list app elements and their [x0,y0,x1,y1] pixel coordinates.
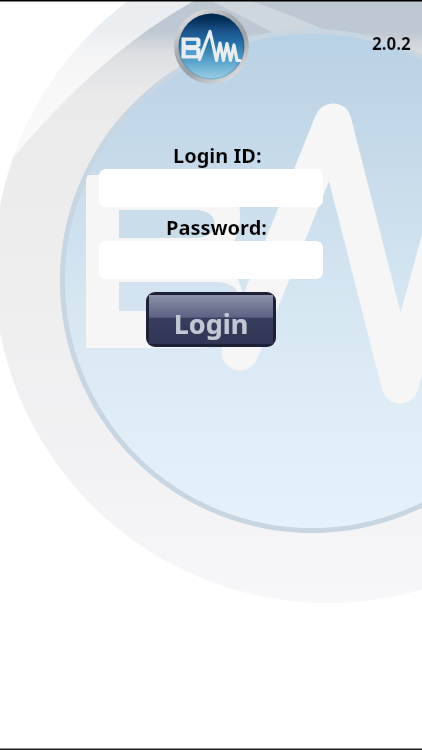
staticText: Login ID: [173,142,262,169]
staticText: Login [146,305,276,347]
staticText: Password: [166,214,267,241]
other: BAM logo [174,9,249,84]
staticText: 2.0.2 [372,32,411,55]
button[interactable]: Login [146,292,276,347]
